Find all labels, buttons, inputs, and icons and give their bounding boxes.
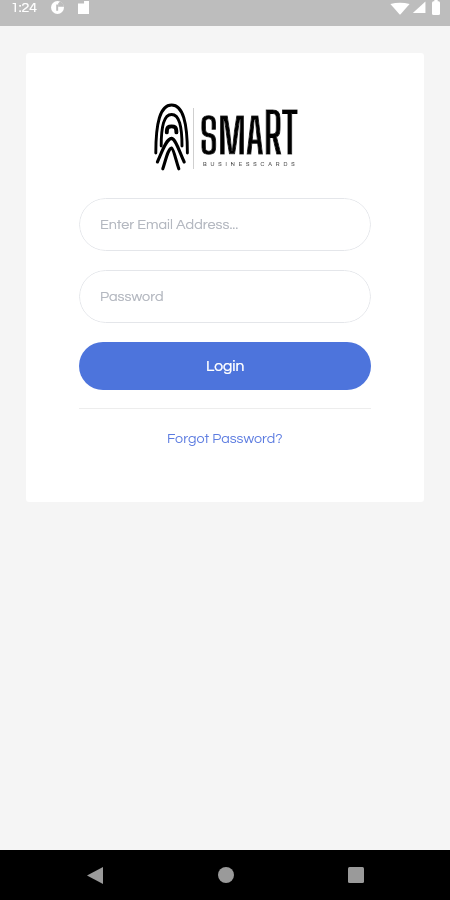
staticText: 1:24 <box>11 1 37 15</box>
staticText: Enter Email Address... <box>100 217 239 232</box>
button[interactable]: Recent apps <box>324 850 388 900</box>
button[interactable]: Enter Email Address... <box>79 198 371 251</box>
staticText: Password <box>100 289 164 304</box>
button[interactable]: Login <box>79 342 371 390</box>
staticText: Forgot Password? <box>167 431 283 446</box>
button[interactable]: Password <box>79 270 371 323</box>
staticText: BUSINESSCARDS <box>203 161 299 167</box>
button[interactable]: Forgot Password? <box>159 427 291 450</box>
button[interactable]: Back <box>63 850 127 900</box>
staticText: smaRT <box>200 100 298 165</box>
staticText: smaRT <box>200 100 298 165</box>
button[interactable]: Home <box>194 850 258 900</box>
staticText: Login <box>206 358 245 374</box>
